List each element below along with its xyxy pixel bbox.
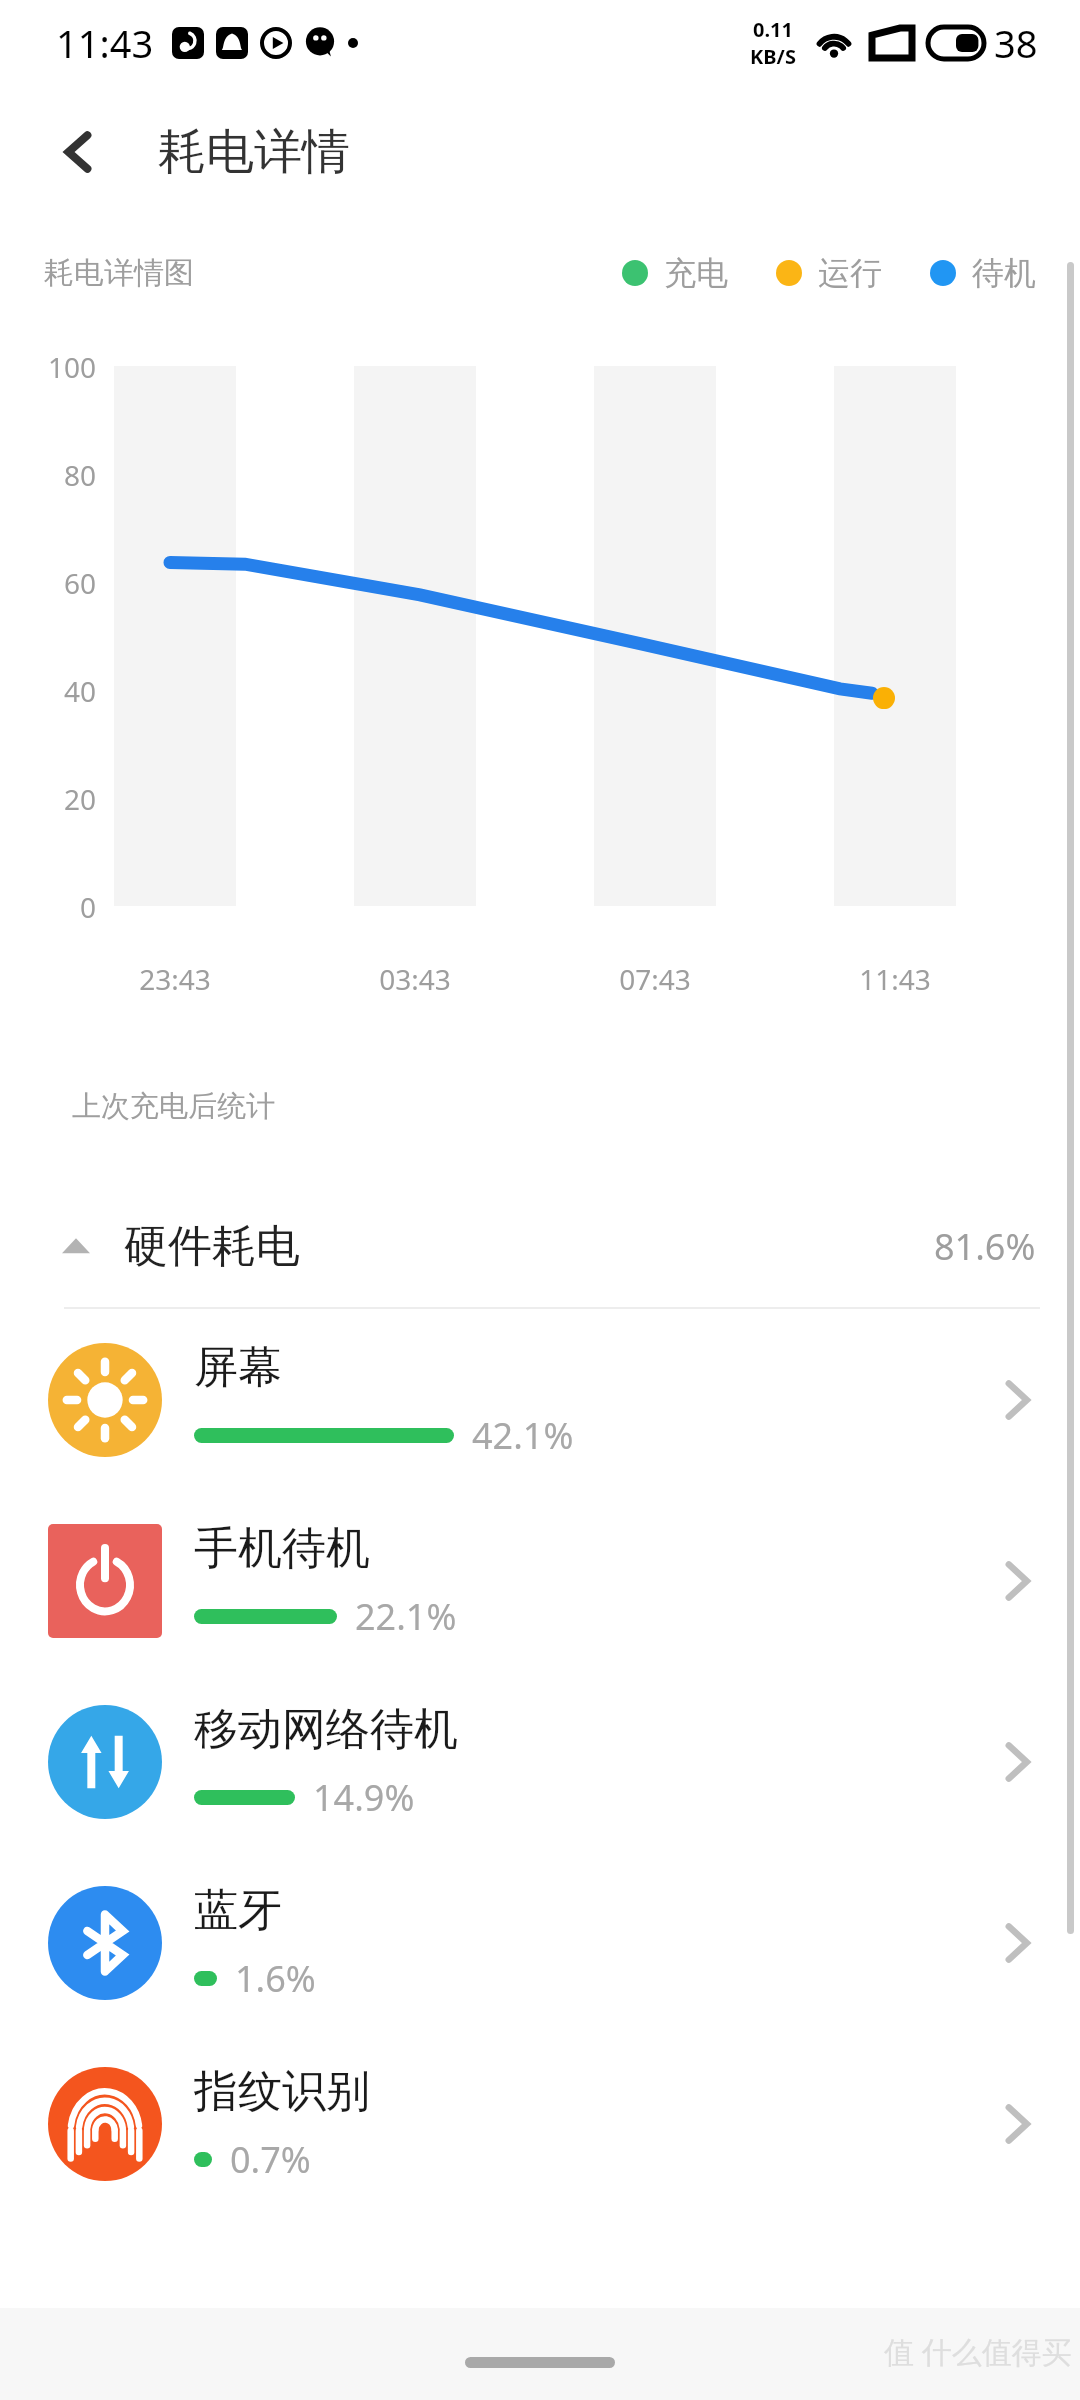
button[interactable]: 屏幕 [0,1309,1080,1490]
staticText: 上次充电后统计 [72,1088,275,1125]
staticText: 硬件耗电 [124,1219,300,1274]
staticText: 07:43 [585,960,725,998]
staticText: 0.7% [230,2135,311,2184]
other: Details [998,2106,1034,2142]
staticText: 60 [0,564,96,602]
button[interactable]: 手机待机 [0,1490,1080,1671]
staticText: 移动网络待机 [194,1702,458,1757]
staticText: KB/S [750,43,796,70]
staticText: 11:43 [825,960,965,998]
staticText: 40 [0,672,96,710]
other: Details [998,1563,1034,1599]
button[interactable]: 硬件耗电 [0,1185,1080,1307]
staticText: 蓝牙 [194,1883,282,1938]
staticText: 100 [0,348,96,386]
button[interactable]: Back [36,109,122,195]
button[interactable]: 移动网络待机 [0,1671,1080,1852]
staticText: 0.11 [753,16,793,43]
button[interactable]: 指纹识别 [0,2033,1080,2214]
other: Details [998,1744,1034,1780]
staticText: 20 [0,780,96,818]
staticText: 充电 [664,253,728,293]
staticText: 1.6% [235,1954,316,2003]
other: Details [998,1382,1034,1418]
staticText: 42.1% [472,1411,574,1460]
staticText: 值 什么值得买 [884,2331,1072,2372]
staticText: 0 [0,888,96,926]
staticText: 38 [994,17,1038,69]
staticText: 指纹识别 [194,2064,370,2119]
staticText: 11:43 [56,17,154,69]
staticText: 耗电详情图 [44,254,194,292]
button[interactable]: 充电 [622,253,728,293]
staticText: 待机 [972,253,1036,293]
staticText: 运行 [818,253,882,293]
staticText: 手机待机 [194,1521,370,1576]
staticText: 14.9% [313,1773,415,1822]
button[interactable]: 运行 [776,253,882,293]
staticText: 耗电详情 [158,122,350,182]
button[interactable]: 待机 [930,253,1036,293]
staticText: 23:43 [105,960,245,998]
staticText: 81.6% [934,1222,1036,1271]
button[interactable]: 蓝牙 [0,1852,1080,2033]
staticText: 03:43 [345,960,485,998]
staticText: 80 [0,456,96,494]
other: Details [998,1925,1034,1961]
staticText: 屏幕 [194,1340,282,1395]
staticText: 22.1% [355,1592,457,1641]
